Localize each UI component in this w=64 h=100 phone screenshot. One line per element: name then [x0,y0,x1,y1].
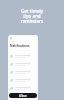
staticText: Notifications [10,44,30,48]
staticText: Get timely tips and reminders [20,8,44,24]
button[interactable]: Allow [9,93,37,98]
staticText: Allow [19,94,27,98]
